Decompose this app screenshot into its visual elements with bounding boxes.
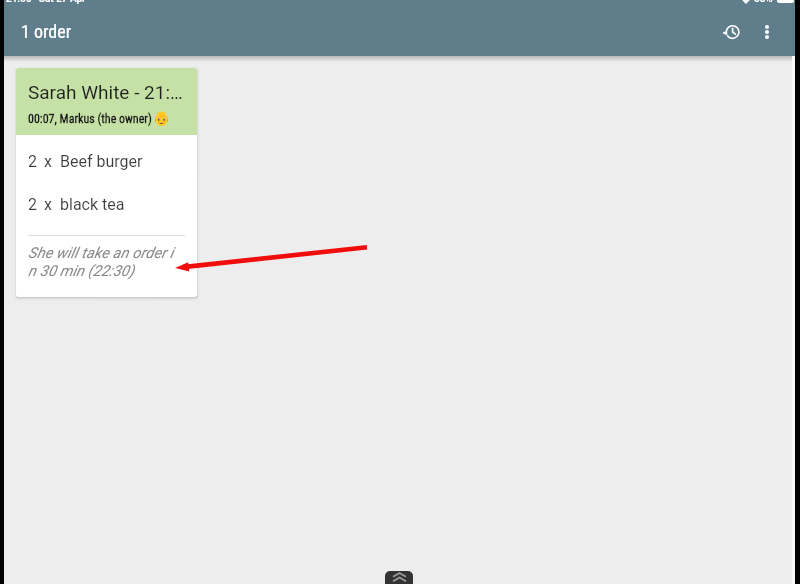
staticText: 1 order bbox=[21, 21, 72, 42]
staticText: n 30 min (22:30) bbox=[28, 262, 135, 280]
staticText: 88% bbox=[754, 0, 773, 5]
staticText: 00:07, Markus (the owner) 👴 bbox=[28, 110, 171, 126]
staticText: Beef burger bbox=[60, 152, 143, 171]
staticText: 2 bbox=[28, 152, 37, 171]
staticText: x bbox=[44, 152, 52, 171]
staticText: x bbox=[44, 195, 52, 214]
button[interactable]: Order history bbox=[713, 14, 749, 50]
staticText: Sarah White - 21:… bbox=[28, 81, 183, 103]
button[interactable]: Show navigation bar bbox=[385, 571, 413, 584]
staticText: She will take an order i bbox=[28, 244, 174, 262]
staticText: 21:56 Sat 27 Apr bbox=[6, 0, 86, 5]
staticText: 2 bbox=[28, 195, 37, 214]
staticText: black tea bbox=[60, 195, 125, 214]
button[interactable]: Sarah White - 21:… bbox=[16, 68, 197, 297]
button[interactable]: More options bbox=[749, 14, 785, 50]
